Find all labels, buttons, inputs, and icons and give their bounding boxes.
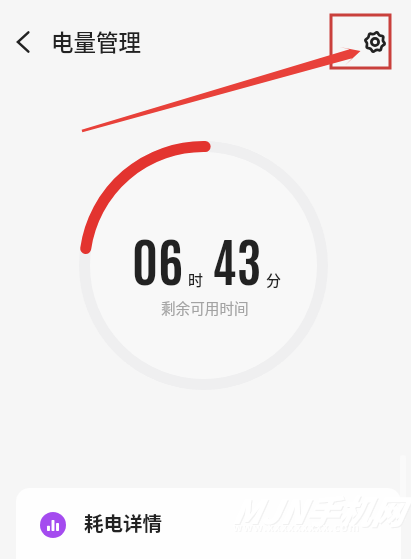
staticText: MJN手机网 xyxy=(232,487,405,535)
staticText: 剩余可用时间 xyxy=(161,297,249,318)
staticText: 分 xyxy=(266,269,282,291)
button[interactable]: Back xyxy=(6,24,42,60)
staticText: 43 xyxy=(212,224,262,293)
staticText: www.xxxxxxxxx.com xyxy=(234,519,362,535)
staticText: MJN手机网 xyxy=(231,486,404,534)
button[interactable]: Settings xyxy=(359,26,391,58)
staticText: www.xxxxxxxxx.com xyxy=(233,518,361,534)
staticText: 06 xyxy=(132,224,183,293)
staticText: 耗电详情 xyxy=(84,508,163,536)
staticText: 电量管理 xyxy=(51,25,142,58)
button[interactable]: 耗电详情 xyxy=(16,488,401,559)
staticText: 时 xyxy=(188,269,204,291)
